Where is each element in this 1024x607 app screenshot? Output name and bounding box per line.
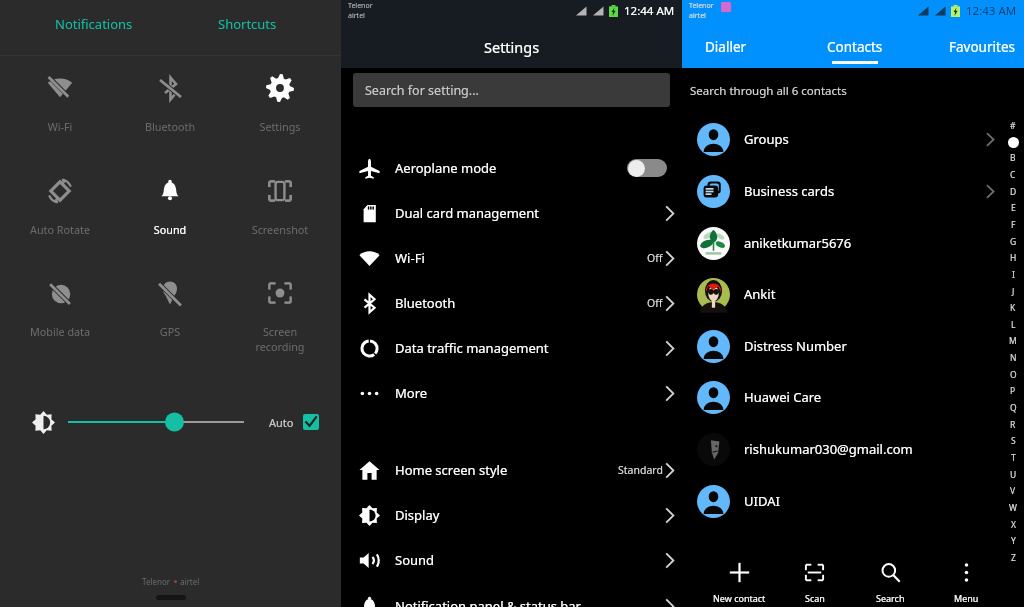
staticText: Scan (805, 592, 825, 604)
staticText: Ankit (744, 285, 776, 303)
staticText: rishukumar030@gmail.com (744, 440, 913, 458)
button[interactable]: UIDAI (682, 475, 1024, 527)
button[interactable]: Bluetooth (341, 281, 682, 325)
staticText: Off (647, 296, 663, 310)
button[interactable]: Groups (682, 113, 1024, 165)
staticText: Dialler (705, 38, 747, 56)
button[interactable]: Wi-Fi (341, 236, 682, 280)
staticText: F (1011, 219, 1016, 231)
button[interactable]: GPS (115, 269, 225, 349)
staticText: Y (1011, 535, 1016, 547)
staticText: Search (876, 592, 905, 604)
staticText: Wi-Fi (5, 119, 115, 134)
staticText: Screen recording (225, 324, 335, 354)
staticText: Auto (269, 415, 294, 430)
staticText: Business cards (744, 182, 835, 200)
button[interactable]: New contact (702, 556, 777, 607)
button[interactable]: Ankit (682, 268, 1024, 320)
staticText: Sound (395, 551, 435, 569)
button[interactable]: rishukumar030@gmail.com (682, 423, 1024, 475)
staticText: airtel (348, 11, 365, 21)
button[interactable]: Notification panel & status bar (341, 584, 682, 607)
staticText: Settings (225, 119, 335, 134)
staticText: Home screen style (395, 461, 508, 479)
staticText: X (1011, 519, 1016, 531)
staticText: Groups (744, 130, 789, 148)
staticText: Menu (954, 592, 979, 604)
staticText: aniketkumar5676 (744, 234, 852, 252)
button[interactable]: Screen recording (225, 269, 335, 349)
staticText: Distress Number (744, 337, 847, 355)
staticText: S (1011, 435, 1016, 447)
staticText: Z (1011, 552, 1016, 564)
button[interactable]: Contacts (801, 26, 909, 68)
button[interactable]: Distress Number (682, 320, 1024, 372)
staticText: Telenor (142, 576, 171, 587)
staticText: Notifications (55, 15, 133, 33)
button[interactable]: Aeroplane mode toggle (627, 159, 667, 177)
button[interactable]: Dialler (672, 26, 780, 68)
staticText: Sound (115, 222, 225, 237)
button[interactable]: Dual card management (341, 191, 682, 235)
staticText: P (1010, 385, 1016, 397)
button[interactable]: Sound (341, 538, 682, 582)
button[interactable]: Screenshot (225, 167, 335, 247)
button[interactable]: Data traffic management (341, 326, 682, 370)
staticText: 12:44 AM (624, 3, 675, 19)
staticText: Favourites (949, 38, 1015, 56)
staticText: Wi-Fi (395, 249, 425, 267)
button[interactable]: Business cards (682, 165, 1024, 217)
staticText: Q (1010, 402, 1017, 414)
staticText: H (1010, 252, 1017, 264)
staticText: Settings (484, 37, 540, 57)
button[interactable]: Huawei Care (682, 371, 1024, 423)
staticText: # (1010, 120, 1016, 132)
staticText: Off (647, 251, 663, 265)
staticText: Screenshot (225, 222, 335, 237)
button[interactable]: Favourites (928, 26, 1024, 68)
button[interactable]: aniketkumar5676 (682, 217, 1024, 269)
staticText: W (1009, 502, 1017, 514)
staticText: O (1010, 369, 1017, 381)
button[interactable]: Settings (225, 64, 335, 144)
button[interactable]: More (341, 371, 682, 415)
staticText: airtel (689, 11, 706, 21)
staticText: G (1010, 236, 1017, 248)
button[interactable]: Auto Rotate (5, 167, 115, 247)
staticText: B (1010, 152, 1016, 164)
staticText: U (1010, 469, 1017, 481)
button[interactable]: Alphabet index (1003, 120, 1023, 564)
button[interactable]: Scan (777, 556, 852, 607)
staticText: R (1010, 419, 1016, 431)
staticText: T (1011, 452, 1016, 464)
staticText: Notification panel & status bar (395, 597, 581, 607)
staticText: New contact (713, 592, 766, 604)
button[interactable]: Aeroplane mode (341, 146, 682, 190)
staticText: Contacts (827, 38, 883, 56)
button[interactable]: Search (852, 556, 928, 607)
button[interactable]: Wi-Fi (5, 64, 115, 144)
staticText: V (1010, 485, 1016, 497)
staticText: E (1011, 202, 1016, 214)
staticText: Shortcuts (218, 15, 277, 33)
staticText: Bluetooth (395, 294, 456, 312)
button[interactable]: Shortcuts (170, 0, 341, 47)
staticText: K (1010, 302, 1016, 314)
staticText: C (1010, 169, 1016, 181)
button[interactable]: Bluetooth (115, 64, 225, 144)
button[interactable]: Mobile data (5, 269, 115, 349)
staticText: D (1010, 186, 1017, 198)
button[interactable]: Auto brightness (303, 414, 319, 430)
staticText: Telenor (348, 1, 373, 11)
staticText: Huawei Care (744, 388, 822, 406)
staticText: Telenor (689, 1, 714, 11)
staticText: More (395, 384, 428, 402)
button[interactable]: Search for setting... (353, 73, 670, 107)
button[interactable]: Brightness (0, 400, 341, 444)
button[interactable]: Display (341, 493, 682, 537)
button[interactable]: Sound (115, 167, 225, 247)
button[interactable]: Home screen style (341, 448, 682, 492)
button[interactable]: Notifications (0, 0, 170, 47)
staticText: Search through all 6 contacts (690, 83, 847, 99)
button[interactable]: Menu (928, 556, 1004, 607)
